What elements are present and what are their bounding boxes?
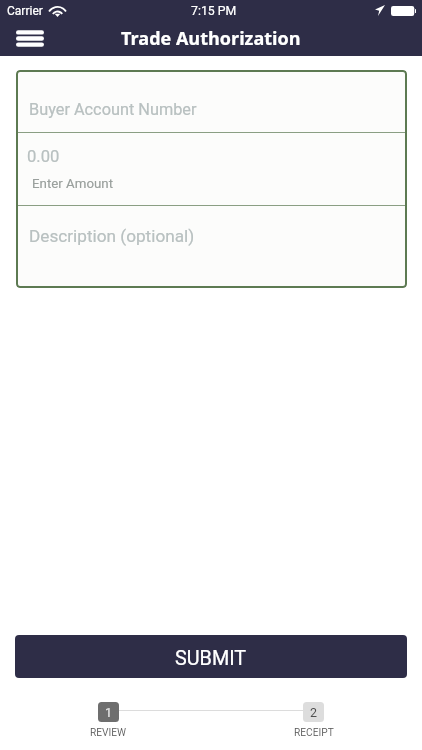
button[interactable]: 2 [303, 702, 324, 722]
staticText: REVIEW [90, 727, 127, 739]
staticText: 1 [105, 705, 113, 720]
button[interactable]: Description (optional) [16, 206, 407, 288]
button[interactable]: SUBMIT [15, 635, 407, 678]
button[interactable]: 1 [98, 702, 119, 722]
staticText: 7:15 PM [191, 4, 237, 18]
button[interactable]: Buyer Account Number [16, 70, 407, 132]
button[interactable]: Open navigation menu [2, 20, 58, 56]
staticText: Trade Authorization [121, 26, 301, 51]
staticText: Carrier [7, 4, 43, 18]
staticText: RECEIPT [294, 727, 334, 739]
staticText: Buyer Account Number [29, 100, 197, 119]
staticText: Description (optional) [29, 226, 195, 246]
button[interactable]: 0.00 [16, 133, 407, 205]
staticText: Enter Amount [32, 176, 114, 192]
staticText: SUBMIT [175, 647, 247, 670]
staticText: 0.00 [27, 147, 60, 166]
staticText: 2 [310, 705, 318, 720]
